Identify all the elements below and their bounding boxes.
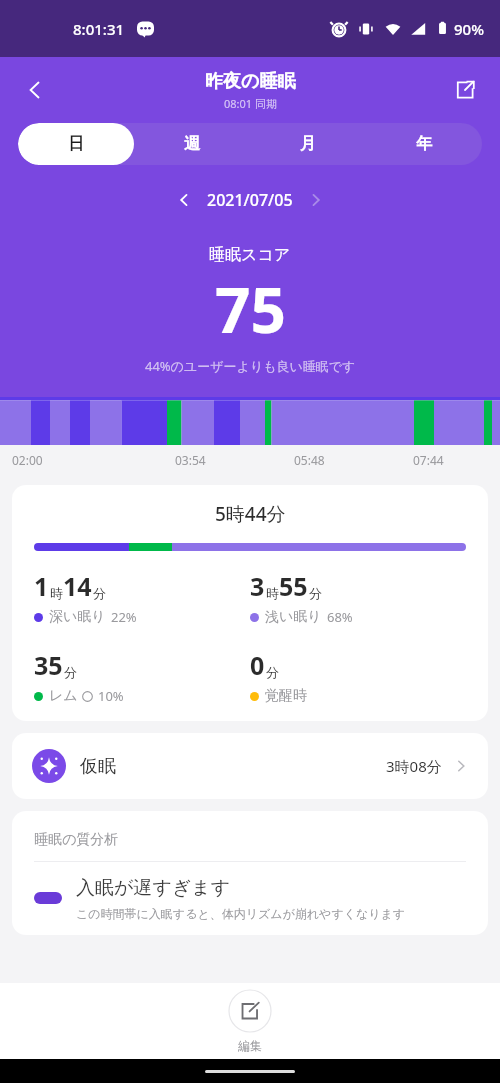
staticText: 08:01 同期 — [224, 96, 277, 111]
staticText: 分 — [64, 664, 77, 680]
staticText: 5時44分 — [215, 501, 286, 527]
staticText: 浅い眠り — [265, 608, 322, 626]
staticText: 分 — [309, 585, 322, 601]
staticText: 年 — [416, 134, 432, 154]
staticText: 0 — [250, 648, 265, 682]
staticText: 8:01:31 — [73, 19, 125, 39]
staticText: 44%のユーザーよりも良い睡眠です — [145, 357, 356, 375]
staticText: 10% — [98, 687, 124, 705]
staticText: この時間帯に入眠すると、体内リズムが崩れやすくなります — [76, 906, 406, 921]
staticText: 月 — [300, 134, 316, 154]
staticText: 日 — [68, 134, 84, 154]
staticText: 03:54 — [175, 452, 206, 468]
staticText: 週 — [184, 134, 200, 154]
staticText: 深い眠り — [49, 608, 106, 626]
staticText: 75 — [215, 267, 286, 351]
button[interactable]: 月 — [250, 123, 366, 165]
staticText: 睡眠の質分析 — [34, 831, 119, 849]
button[interactable]: 戻る — [12, 67, 58, 113]
button[interactable]: 仮眠 — [12, 733, 488, 799]
staticText: 90% — [454, 19, 484, 39]
button[interactable]: 編集 — [0, 983, 500, 1059]
staticText: 仮眠 — [80, 755, 116, 778]
staticText: 分 — [266, 664, 279, 680]
staticText: 07:44 — [413, 452, 444, 468]
staticText: 3時08分 — [386, 756, 442, 776]
staticText: 入眠が遅すぎます — [76, 876, 231, 900]
staticText: 68% — [327, 608, 353, 626]
staticText: 22% — [111, 608, 137, 626]
staticText: 睡眠スコア — [209, 245, 291, 265]
staticText: 35 — [34, 648, 63, 682]
staticText: 昨夜の睡眠 — [205, 70, 296, 93]
staticText: 2021/07/05 — [207, 189, 293, 211]
button[interactable]: 前の日 — [167, 183, 201, 217]
staticText: レム — [49, 687, 78, 705]
button[interactable]: 5時44分 — [12, 485, 488, 721]
staticText: 55 — [279, 569, 308, 603]
button[interactable]: 睡眠の質分析 — [12, 811, 488, 935]
staticText: 時 — [266, 585, 279, 601]
staticText: 分 — [93, 585, 106, 601]
staticText: 14 — [63, 569, 92, 603]
staticText: 02:00 — [12, 452, 43, 468]
staticText: 05:48 — [294, 452, 325, 468]
button[interactable]: 週 — [134, 123, 250, 165]
staticText: 覚醒時 — [265, 687, 307, 705]
button[interactable]: 年 — [366, 123, 482, 165]
button[interactable]: 次の日 — [299, 183, 333, 217]
staticText: 時 — [50, 585, 63, 601]
button[interactable]: 日 — [18, 123, 134, 165]
staticText: 1 — [34, 569, 49, 603]
staticText: 3 — [250, 569, 265, 603]
staticText: 編集 — [238, 1038, 262, 1053]
button[interactable]: 共有 — [442, 67, 488, 113]
